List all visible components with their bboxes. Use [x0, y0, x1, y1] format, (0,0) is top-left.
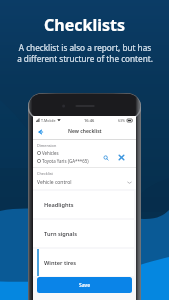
staticText: 16:46 — [84, 118, 95, 123]
staticText: Toyota Yaris (GA***65) — [42, 158, 89, 164]
staticText: Vehicle control — [37, 179, 72, 186]
staticText: Checklist — [37, 171, 53, 176]
staticText: Dimension — [37, 143, 57, 148]
button[interactable]: Turn signals — [33, 220, 134, 247]
button[interactable]: Save — [37, 277, 132, 293]
staticText: T-Mobile — [41, 118, 56, 123]
staticText: Checklists — [44, 14, 125, 36]
button[interactable]: Headlights — [33, 191, 134, 218]
staticText: A checklist is also a report, but has a … — [17, 42, 153, 64]
button[interactable]: Clear — [117, 153, 126, 162]
button[interactable]: Vehicle control — [37, 179, 132, 186]
button[interactable]: Back — [36, 128, 44, 136]
staticText: Save — [79, 282, 91, 289]
staticText: 63% — [118, 118, 126, 123]
staticText: New checklist — [68, 128, 102, 135]
staticText: Turn signals — [44, 230, 77, 238]
staticText: Winter tires — [44, 259, 77, 267]
button[interactable]: Search — [101, 153, 110, 162]
staticText: Vehicles — [42, 150, 59, 156]
staticText: Headlights — [44, 201, 74, 209]
button[interactable]: Winter tires — [33, 249, 134, 276]
